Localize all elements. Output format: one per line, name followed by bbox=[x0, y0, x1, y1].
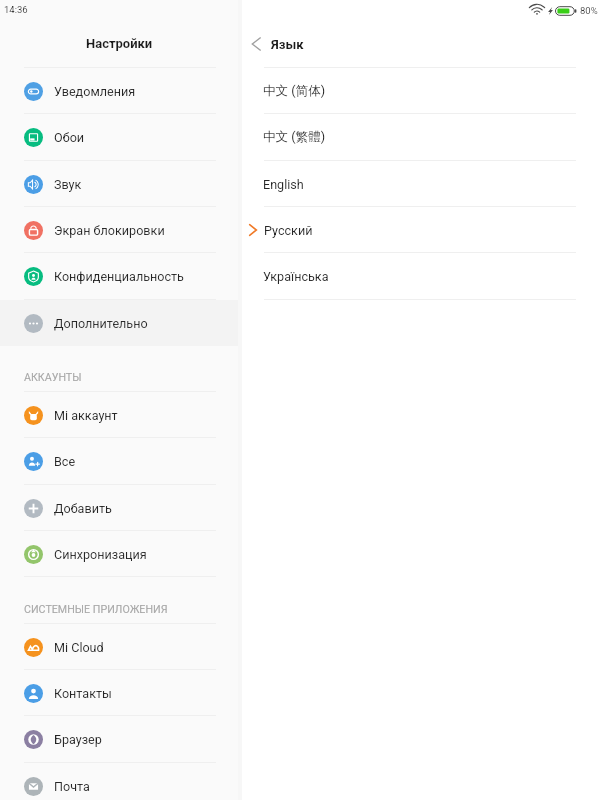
button[interactable]: Звук bbox=[0, 161, 238, 207]
staticText: Русский bbox=[264, 223, 313, 238]
button[interactable]: Дополнительно bbox=[0, 300, 238, 346]
staticText: СИСТЕМНЫЕ ПРИЛОЖЕНИЯ bbox=[24, 603, 168, 616]
button[interactable]: Українська bbox=[242, 253, 600, 299]
staticText: Добавить bbox=[54, 501, 112, 516]
staticText: Mi Cloud bbox=[54, 640, 104, 655]
staticText: 中文 (简体) bbox=[263, 83, 326, 99]
button[interactable]: Экран блокировки bbox=[0, 207, 238, 253]
button[interactable]: Добавить bbox=[0, 485, 238, 531]
staticText: Контакты bbox=[54, 686, 112, 701]
staticText: Звук bbox=[54, 177, 82, 192]
button[interactable]: English bbox=[242, 161, 600, 207]
button[interactable]: Контакты bbox=[0, 670, 238, 716]
button[interactable]: Русский bbox=[242, 207, 600, 253]
button[interactable]: Back bbox=[246, 34, 266, 54]
button[interactable]: Конфиденциальность bbox=[0, 253, 238, 299]
staticText: Дополнительно bbox=[54, 316, 148, 331]
staticText: 80% bbox=[580, 5, 598, 16]
staticText: English bbox=[263, 177, 304, 192]
button[interactable]: Браузер bbox=[0, 716, 238, 762]
staticText: 中文 (繁體) bbox=[263, 129, 326, 145]
button[interactable]: 中文 (繁體) bbox=[242, 114, 600, 160]
staticText: Экран блокировки bbox=[54, 223, 165, 238]
staticText: Все bbox=[54, 454, 76, 469]
staticText: Уведомления bbox=[54, 84, 136, 99]
staticText: Синхронизация bbox=[54, 547, 147, 562]
staticText: Конфиденциальность bbox=[54, 269, 184, 284]
button[interactable]: Все bbox=[0, 438, 238, 484]
button[interactable]: Mi Cloud bbox=[0, 624, 238, 670]
button[interactable]: Синхронизация bbox=[0, 531, 238, 577]
staticText: Обои bbox=[54, 130, 85, 145]
staticText: 14:36 bbox=[4, 4, 28, 15]
staticText: АККАУНТЫ bbox=[24, 371, 82, 384]
button[interactable]: Почта bbox=[0, 763, 238, 800]
staticText: Почта bbox=[54, 779, 90, 794]
staticText: Язык bbox=[271, 37, 304, 52]
staticText: Українська bbox=[263, 269, 329, 284]
button[interactable]: Уведомления bbox=[0, 68, 238, 114]
staticText: Mi аккаунт bbox=[54, 408, 118, 423]
button[interactable]: 中文 (简体) bbox=[242, 68, 600, 114]
staticText: Настройки bbox=[86, 36, 153, 51]
button[interactable]: Mi аккаунт bbox=[0, 392, 238, 438]
button[interactable]: Обои bbox=[0, 114, 238, 160]
staticText: Браузер bbox=[54, 732, 102, 747]
